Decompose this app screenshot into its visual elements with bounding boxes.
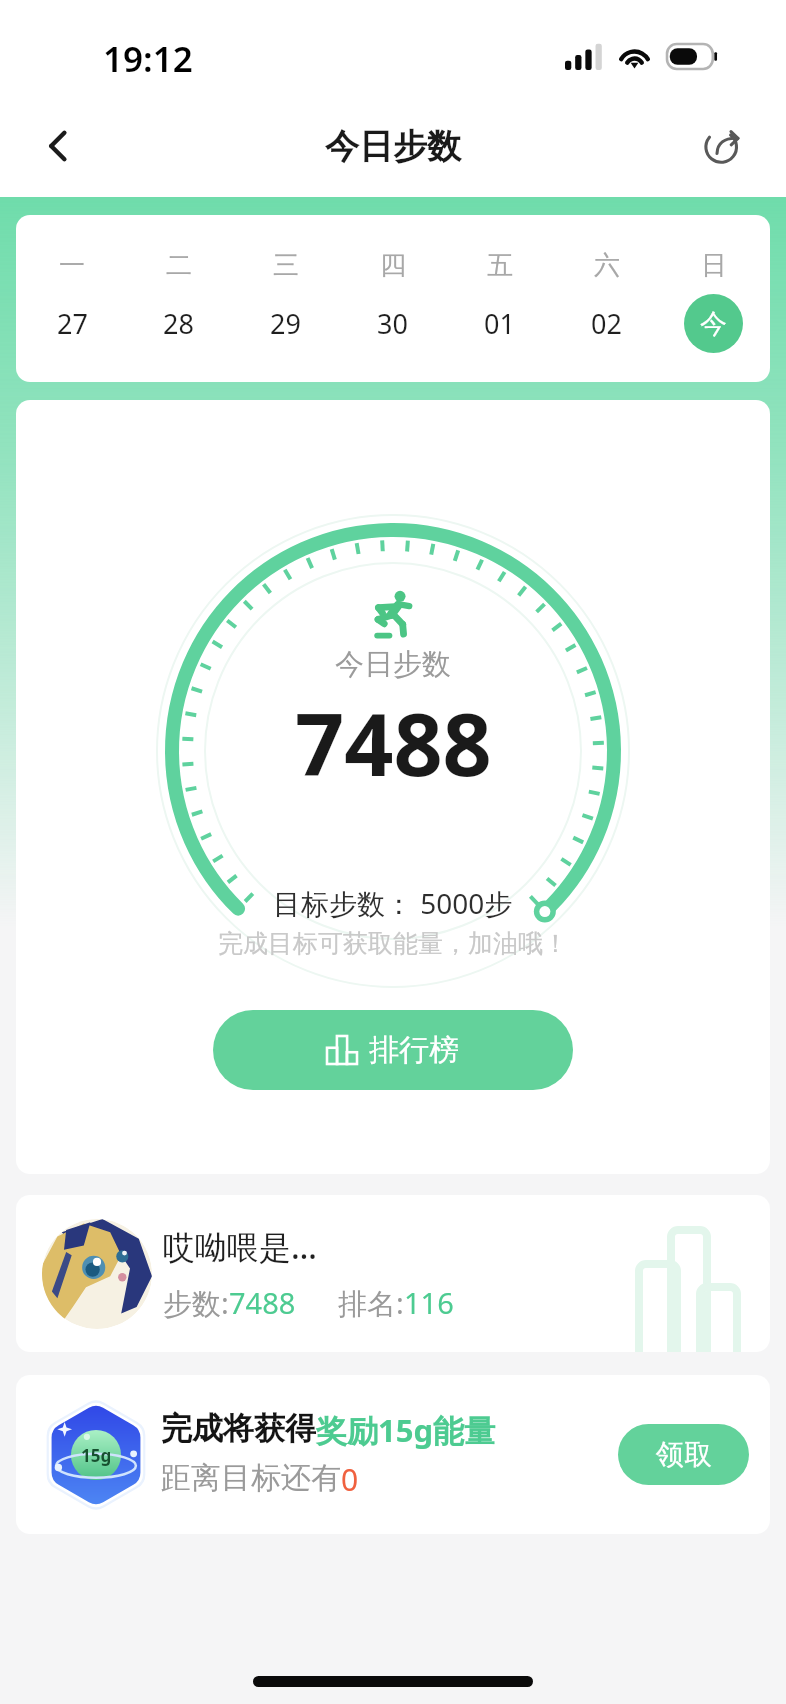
staticText: 日 xyxy=(701,249,727,282)
staticText: 二 xyxy=(166,249,192,282)
button[interactable]: 三 xyxy=(232,215,339,382)
staticText: 116 xyxy=(404,1283,454,1322)
staticText: 30 xyxy=(377,305,408,342)
button[interactable]: Back xyxy=(14,102,102,190)
staticText: 29 xyxy=(270,305,301,342)
staticText: 四 xyxy=(380,249,406,282)
staticText: 目标步数： 5000步 xyxy=(273,884,513,922)
staticText: 今 xyxy=(700,307,727,341)
button[interactable]: 领取 xyxy=(618,1424,749,1485)
staticText: 领取 xyxy=(656,1437,712,1472)
staticText: 步数: xyxy=(163,1283,229,1323)
staticText: 排行榜 xyxy=(369,1031,459,1069)
button[interactable]: 四 xyxy=(339,215,446,382)
button[interactable]: Share xyxy=(680,102,768,190)
staticText: 排名: xyxy=(338,1283,404,1323)
staticText: 哎呦喂是… xyxy=(163,1225,317,1269)
button[interactable]: 六 xyxy=(553,215,660,382)
staticText: 27 xyxy=(57,305,88,342)
staticText: 完成目标可获取能量，加油哦！ xyxy=(218,928,568,959)
staticText: 五 xyxy=(487,249,513,282)
staticText: 02 xyxy=(591,305,622,342)
staticText: 一 xyxy=(59,249,85,282)
button[interactable]: 排行榜 xyxy=(213,1010,573,1090)
staticText: 7488 xyxy=(229,1283,296,1322)
staticText: 距离目标还有 xyxy=(161,1459,341,1497)
button[interactable]: 二 xyxy=(125,215,232,382)
button[interactable]: 一 xyxy=(19,215,125,382)
staticText: 今日步数 xyxy=(335,646,451,683)
staticText: 7488 xyxy=(295,684,492,801)
staticText: 奖励15g能量 xyxy=(316,1409,496,1451)
button[interactable]: 五 xyxy=(446,215,553,382)
button[interactable]: 哎呦喂是… xyxy=(16,1195,770,1352)
staticText: 三 xyxy=(273,249,299,282)
staticText: 15g xyxy=(81,1444,112,1467)
staticText: 0 xyxy=(341,1459,359,1500)
staticText: 六 xyxy=(594,249,620,282)
staticText: 完成将获得 xyxy=(161,1409,316,1448)
staticText: 今日步数 xyxy=(325,125,461,168)
button[interactable]: 日 xyxy=(660,215,767,382)
staticText: 01 xyxy=(484,305,515,342)
staticText: 28 xyxy=(163,305,194,342)
staticText: 19:12 xyxy=(103,35,193,83)
